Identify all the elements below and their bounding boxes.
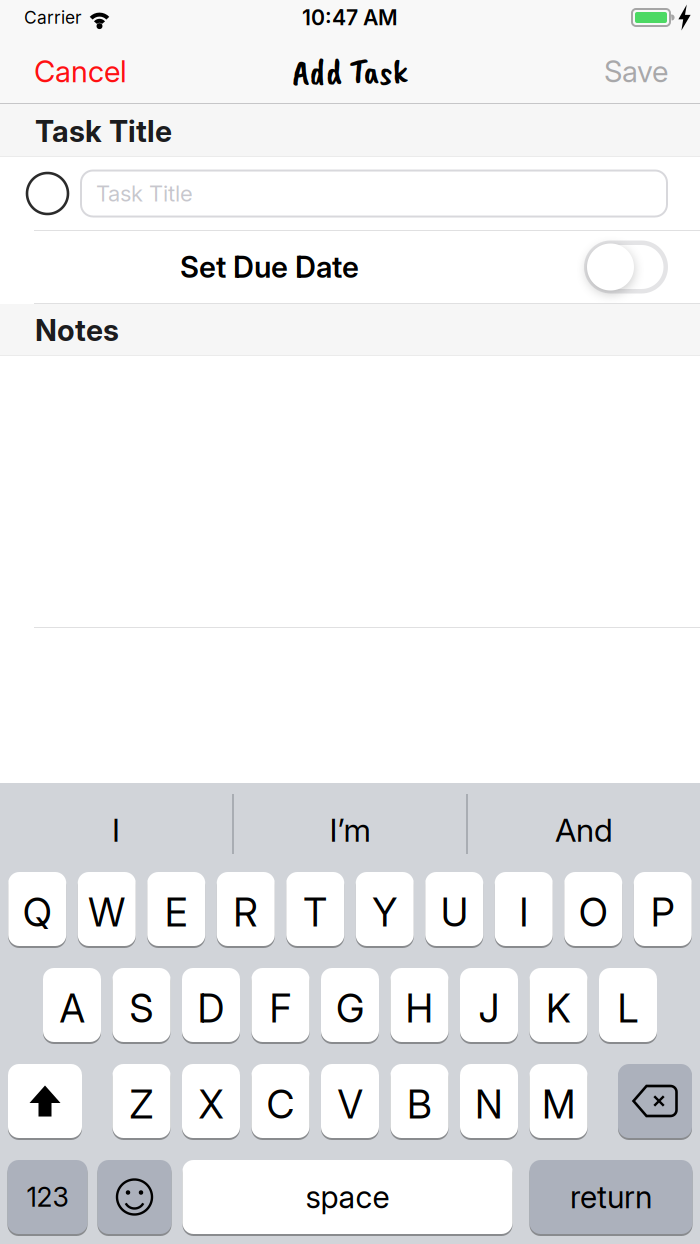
staticText: E bbox=[165, 889, 188, 936]
staticText: F bbox=[269, 985, 291, 1032]
staticText: Y bbox=[372, 889, 397, 936]
staticText: S bbox=[129, 985, 153, 1032]
button[interactable]: G bbox=[321, 968, 379, 1042]
staticText: 123 bbox=[26, 1181, 68, 1213]
staticText: M bbox=[542, 1081, 575, 1128]
button[interactable]: N bbox=[460, 1064, 518, 1138]
staticText: 10:47 AM bbox=[302, 5, 398, 30]
button[interactable]: S bbox=[112, 968, 170, 1042]
staticText: And bbox=[555, 811, 613, 849]
staticText: Save bbox=[604, 54, 668, 89]
staticText: B bbox=[407, 1081, 432, 1128]
button[interactable]: O bbox=[564, 872, 622, 946]
staticText: Task Title bbox=[96, 180, 193, 207]
button[interactable]: Cancel bbox=[34, 54, 127, 89]
button[interactable]: space bbox=[182, 1160, 512, 1234]
staticText: X bbox=[198, 1081, 223, 1128]
button[interactable] bbox=[97, 1160, 171, 1234]
staticText: space bbox=[305, 1178, 389, 1215]
staticText: N bbox=[475, 1081, 503, 1128]
button[interactable]: E bbox=[147, 872, 205, 946]
staticText: C bbox=[266, 1081, 294, 1128]
staticText: U bbox=[441, 889, 468, 936]
button[interactable]: J bbox=[460, 968, 518, 1042]
button[interactable]: W bbox=[78, 872, 136, 946]
button[interactable]: I’m bbox=[234, 783, 466, 865]
staticText: P bbox=[651, 889, 675, 936]
button[interactable]: U bbox=[425, 872, 483, 946]
staticText: W bbox=[88, 889, 125, 936]
button[interactable]: D bbox=[182, 968, 240, 1042]
button[interactable]: M bbox=[529, 1064, 587, 1138]
button[interactable]: B bbox=[390, 1064, 448, 1138]
button[interactable]: V bbox=[321, 1064, 379, 1138]
staticText: G bbox=[336, 985, 364, 1032]
staticText: D bbox=[197, 985, 224, 1032]
button[interactable]: Task Title bbox=[81, 170, 667, 216]
staticText: V bbox=[337, 1081, 362, 1128]
button[interactable]: C bbox=[251, 1064, 309, 1138]
button[interactable]: H bbox=[390, 968, 448, 1042]
button[interactable]: F bbox=[251, 968, 309, 1042]
button[interactable]: 123 bbox=[7, 1160, 87, 1234]
button[interactable] bbox=[618, 1064, 692, 1138]
button[interactable] bbox=[8, 1064, 82, 1138]
staticText: A bbox=[59, 985, 84, 1032]
button[interactable]: I bbox=[495, 872, 553, 946]
staticText: Notes bbox=[35, 312, 119, 348]
staticText: T bbox=[303, 889, 327, 936]
staticText: I bbox=[112, 811, 120, 849]
staticText: Z bbox=[129, 1081, 153, 1128]
button[interactable]: I bbox=[0, 783, 232, 865]
staticText: Q bbox=[23, 889, 52, 936]
button[interactable] bbox=[27, 173, 68, 214]
staticText: J bbox=[478, 985, 499, 1032]
button[interactable]: And bbox=[468, 783, 700, 865]
staticText: return bbox=[570, 1178, 652, 1215]
button[interactable]: return bbox=[529, 1160, 692, 1234]
button[interactable]: Save bbox=[604, 54, 668, 89]
staticText: R bbox=[233, 889, 258, 936]
staticText: Task Title bbox=[35, 113, 172, 149]
staticText: I bbox=[519, 889, 528, 936]
staticText: K bbox=[546, 985, 571, 1032]
button[interactable]: Y bbox=[356, 872, 414, 946]
button[interactable]: K bbox=[529, 968, 587, 1042]
button[interactable]: P bbox=[634, 872, 692, 946]
staticText: L bbox=[617, 985, 638, 1032]
button[interactable]: L bbox=[599, 968, 657, 1042]
button[interactable]: Z bbox=[112, 1064, 170, 1138]
button[interactable] bbox=[584, 240, 668, 293]
staticText: Add Task bbox=[292, 49, 407, 94]
button[interactable]: R bbox=[217, 872, 275, 946]
staticText: Carrier bbox=[24, 7, 82, 28]
staticText: H bbox=[405, 985, 433, 1032]
staticText: Set Due Date bbox=[180, 249, 359, 285]
button[interactable]: A bbox=[43, 968, 101, 1042]
button[interactable]: Q bbox=[8, 872, 66, 946]
staticText: I’m bbox=[329, 811, 370, 849]
staticText: O bbox=[579, 889, 608, 936]
button[interactable]: X bbox=[182, 1064, 240, 1138]
button[interactable]: T bbox=[286, 872, 344, 946]
staticText: Cancel bbox=[34, 54, 127, 89]
